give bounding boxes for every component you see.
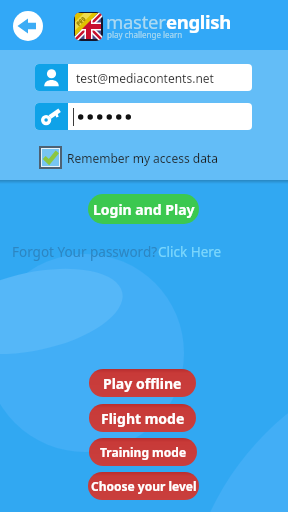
button[interactable]: Training mode (89, 438, 197, 466)
button[interactable]: test@mediacontents.net (35, 64, 252, 91)
staticText: Play offline (103, 374, 182, 393)
staticText: test@mediacontents.net (76, 70, 214, 86)
button[interactable]: Flight mode (89, 404, 196, 432)
staticText: Login and Play (93, 200, 195, 219)
button[interactable]: Play offline (89, 369, 196, 397)
staticText: Training mode (100, 444, 187, 460)
staticText: play challenge learn (107, 29, 183, 40)
button[interactable]: Click Here (158, 243, 222, 261)
button[interactable] (35, 103, 252, 130)
button[interactable]: Login and Play (88, 194, 199, 224)
button[interactable]: Remember my access data (39, 146, 218, 169)
staticText: master (106, 9, 166, 34)
button[interactable]: Back (13, 11, 43, 41)
staticText: Forgot Your password? (12, 243, 158, 261)
staticText: Choose your level (91, 478, 197, 494)
staticText: Flight mode (101, 409, 185, 428)
staticText: Remember my access data (67, 150, 218, 166)
button[interactable]: Choose your level (88, 472, 199, 500)
staticText: english (166, 9, 232, 34)
